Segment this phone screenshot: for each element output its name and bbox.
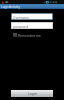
staticText: password	[13, 24, 28, 28]
staticText: LoginActivity	[1, 5, 21, 9]
button[interactable]: Username	[11, 13, 53, 20]
button[interactable]: Remember me	[13, 33, 41, 37]
staticText: Remember me	[18, 33, 41, 37]
button[interactable]: Login	[11, 90, 53, 97]
staticText: Login	[28, 91, 37, 96]
staticText: Username	[13, 15, 30, 19]
button[interactable]: password	[11, 22, 53, 29]
